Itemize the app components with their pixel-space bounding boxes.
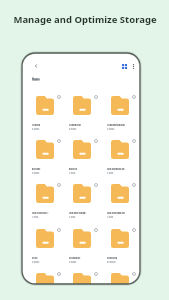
staticText: 24 items bbox=[107, 261, 116, 264]
staticText: 1 item bbox=[69, 171, 76, 174]
button[interactable]: Back bbox=[30, 60, 41, 71]
staticText: Download bbox=[107, 257, 117, 260]
staticText: Home bbox=[32, 77, 40, 81]
staticText: DCIM bbox=[32, 257, 38, 260]
button[interactable]: com.kitMobile.linl bbox=[105, 181, 140, 221]
staticText: 6 items bbox=[69, 127, 77, 130]
button[interactable]: com.irishanas.c.. bbox=[30, 181, 67, 221]
staticText: com.kitMobile.linl bbox=[107, 211, 125, 214]
staticText: 2 items bbox=[32, 172, 40, 175]
button[interactable]: Notifications bbox=[105, 270, 140, 284]
staticText: com.hqqs.jsdrag.. bbox=[69, 211, 87, 214]
button[interactable]: Documents bbox=[67, 226, 104, 266]
button[interactable]: Android bbox=[30, 93, 67, 133]
button[interactable]: Download bbox=[105, 226, 140, 266]
staticText: 1 item bbox=[32, 215, 39, 218]
staticText: 1 item bbox=[107, 215, 114, 218]
staticText: com.achievion.ve.. bbox=[107, 168, 126, 171]
staticText: com.hqqs.jsdrag.. bbox=[69, 212, 87, 215]
staticText: 6 items bbox=[69, 128, 77, 131]
staticText: Binance bbox=[69, 167, 77, 170]
staticText: backups bbox=[32, 168, 41, 171]
button[interactable]: AudioEditorGuitar bbox=[105, 93, 140, 133]
staticText: AudioEditorGuitar bbox=[107, 123, 126, 126]
staticText: 1 item bbox=[107, 216, 114, 219]
staticText: 24 items bbox=[107, 260, 116, 263]
staticText: Android bbox=[32, 124, 40, 127]
staticText: 3 items bbox=[32, 261, 40, 264]
staticText: AudioEditorGuitar bbox=[107, 124, 126, 127]
staticText: 3 items bbox=[32, 260, 40, 263]
staticText: Download bbox=[107, 256, 117, 259]
staticText: 1 item bbox=[107, 172, 114, 175]
button[interactable]: Binance bbox=[67, 137, 104, 177]
button[interactable]: Grid view bbox=[119, 61, 130, 72]
staticText: Android bbox=[32, 123, 40, 126]
staticText: 1 item bbox=[107, 171, 114, 174]
staticText: 2 items bbox=[32, 171, 40, 174]
staticText: Documents bbox=[69, 256, 81, 259]
button[interactable]: More options bbox=[128, 61, 139, 72]
staticText: 3 items bbox=[69, 260, 77, 263]
staticText: com.achievion.ve.. bbox=[107, 167, 126, 170]
staticText: 1 item bbox=[69, 172, 76, 175]
staticText: DCIM bbox=[32, 256, 38, 259]
staticText: com.irishanas.c.. bbox=[32, 212, 49, 215]
button[interactable]: backups bbox=[30, 137, 67, 177]
staticText: 1 item bbox=[69, 215, 76, 218]
staticText: backups bbox=[32, 167, 41, 170]
button[interactable]: com.achievion.ve.. bbox=[105, 137, 140, 177]
staticText: AudioBooks bbox=[69, 124, 81, 127]
button[interactable]: AudioBooks bbox=[67, 93, 104, 133]
staticText: 1 item bbox=[69, 216, 76, 219]
staticText: com.irishanas.c.. bbox=[32, 211, 49, 214]
staticText: Manage and Optimize Storage bbox=[13, 13, 157, 26]
button[interactable]: Movies bbox=[30, 270, 67, 284]
button[interactable]: com.hqqs.jsdrag.. bbox=[67, 181, 104, 221]
staticText: 3 items bbox=[69, 261, 77, 264]
button[interactable]: DCIM bbox=[30, 226, 67, 266]
staticText: 4 items bbox=[107, 128, 115, 131]
staticText: 1 item bbox=[32, 216, 39, 219]
staticText: AudioBooks bbox=[69, 123, 81, 126]
staticText: Home bbox=[32, 78, 40, 82]
staticText: Binance bbox=[69, 168, 77, 171]
staticText: com.kitMobile.linl bbox=[107, 212, 125, 215]
staticText: 3 items bbox=[32, 128, 40, 131]
staticText: 3 items bbox=[32, 127, 40, 130]
staticText: Documents bbox=[69, 257, 81, 260]
button[interactable]: Music bbox=[67, 270, 104, 284]
staticText: 4 items bbox=[107, 127, 115, 130]
